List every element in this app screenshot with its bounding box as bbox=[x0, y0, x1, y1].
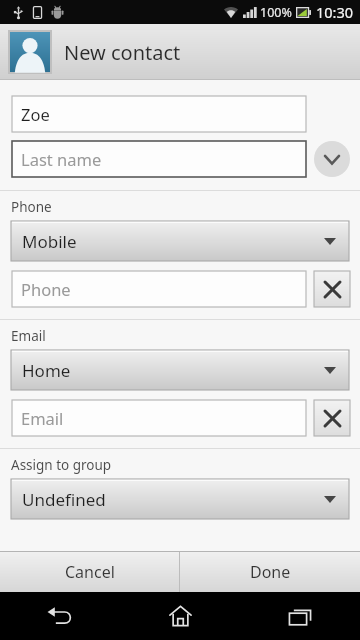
staticText: Undefined bbox=[22, 488, 106, 511]
button[interactable]: Phone bbox=[12, 271, 306, 307]
staticText: Email bbox=[11, 327, 46, 345]
button[interactable]: Cancel bbox=[0, 552, 179, 592]
button[interactable]: Expand name fields bbox=[314, 141, 350, 177]
button[interactable]: Last name bbox=[12, 141, 306, 177]
staticText: Phone bbox=[21, 278, 71, 300]
button[interactable]: Zoe bbox=[12, 96, 306, 132]
staticText: Cancel bbox=[65, 561, 115, 583]
staticText: Email bbox=[21, 407, 64, 429]
staticText: Home bbox=[22, 359, 71, 382]
button[interactable]: Delete Email bbox=[314, 400, 350, 436]
button[interactable]: Email bbox=[12, 400, 306, 436]
button[interactable]: Recent apps bbox=[240, 592, 360, 640]
button[interactable]: Back bbox=[0, 592, 120, 640]
staticText: New contact bbox=[64, 39, 181, 66]
staticText: Zoe bbox=[21, 103, 50, 125]
button[interactable]: Mobile bbox=[11, 221, 349, 261]
staticText: 100% bbox=[260, 4, 292, 21]
button[interactable]: Home bbox=[120, 592, 240, 640]
staticText: Done bbox=[250, 561, 291, 583]
button[interactable]: Home bbox=[11, 350, 349, 390]
staticText: Last name bbox=[21, 148, 102, 170]
button[interactable]: Undefined bbox=[11, 479, 349, 519]
staticText: Mobile bbox=[22, 230, 77, 253]
staticText: Assign to group bbox=[11, 456, 112, 474]
staticText: 10:30 bbox=[316, 2, 354, 22]
button[interactable]: Done bbox=[180, 552, 360, 592]
staticText: Phone bbox=[11, 198, 52, 216]
button[interactable]: Delete Phone bbox=[314, 271, 350, 307]
